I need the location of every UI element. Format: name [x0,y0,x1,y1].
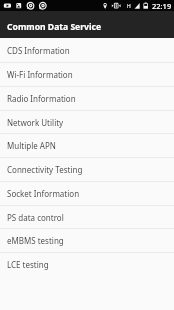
button[interactable]: Socket Information [0,181,174,205]
staticText: 22:19 [152,1,172,11]
button[interactable]: PS data control [0,205,174,229]
staticText: LCE testing [7,259,49,270]
button[interactable]: Radio Information [0,86,174,110]
staticText: Common Data Service [7,21,102,33]
button[interactable]: Multiple APN [0,133,174,157]
button[interactable]: eMBMS testing [0,228,174,252]
other: Status bar icons [0,0,174,11]
staticText: CDS Information [7,45,70,56]
staticText: Socket Information [7,188,80,199]
staticText: Multiple APN [7,140,56,151]
staticText: Network Utility [7,117,64,128]
staticText: Wi-Fi Information [7,69,73,80]
staticText: Connectivity Testing [7,164,83,175]
staticText: PS data control [7,212,64,223]
staticText: H [127,3,131,10]
button[interactable]: Network Utility [0,110,174,134]
button[interactable]: Wi-Fi Information [0,62,174,86]
button[interactable]: CDS Information [0,38,174,62]
staticText: eMBMS testing [7,235,64,246]
button[interactable]: LCE testing [0,252,174,276]
button[interactable]: Connectivity Testing [0,157,174,181]
staticText: Radio Information [7,93,76,104]
